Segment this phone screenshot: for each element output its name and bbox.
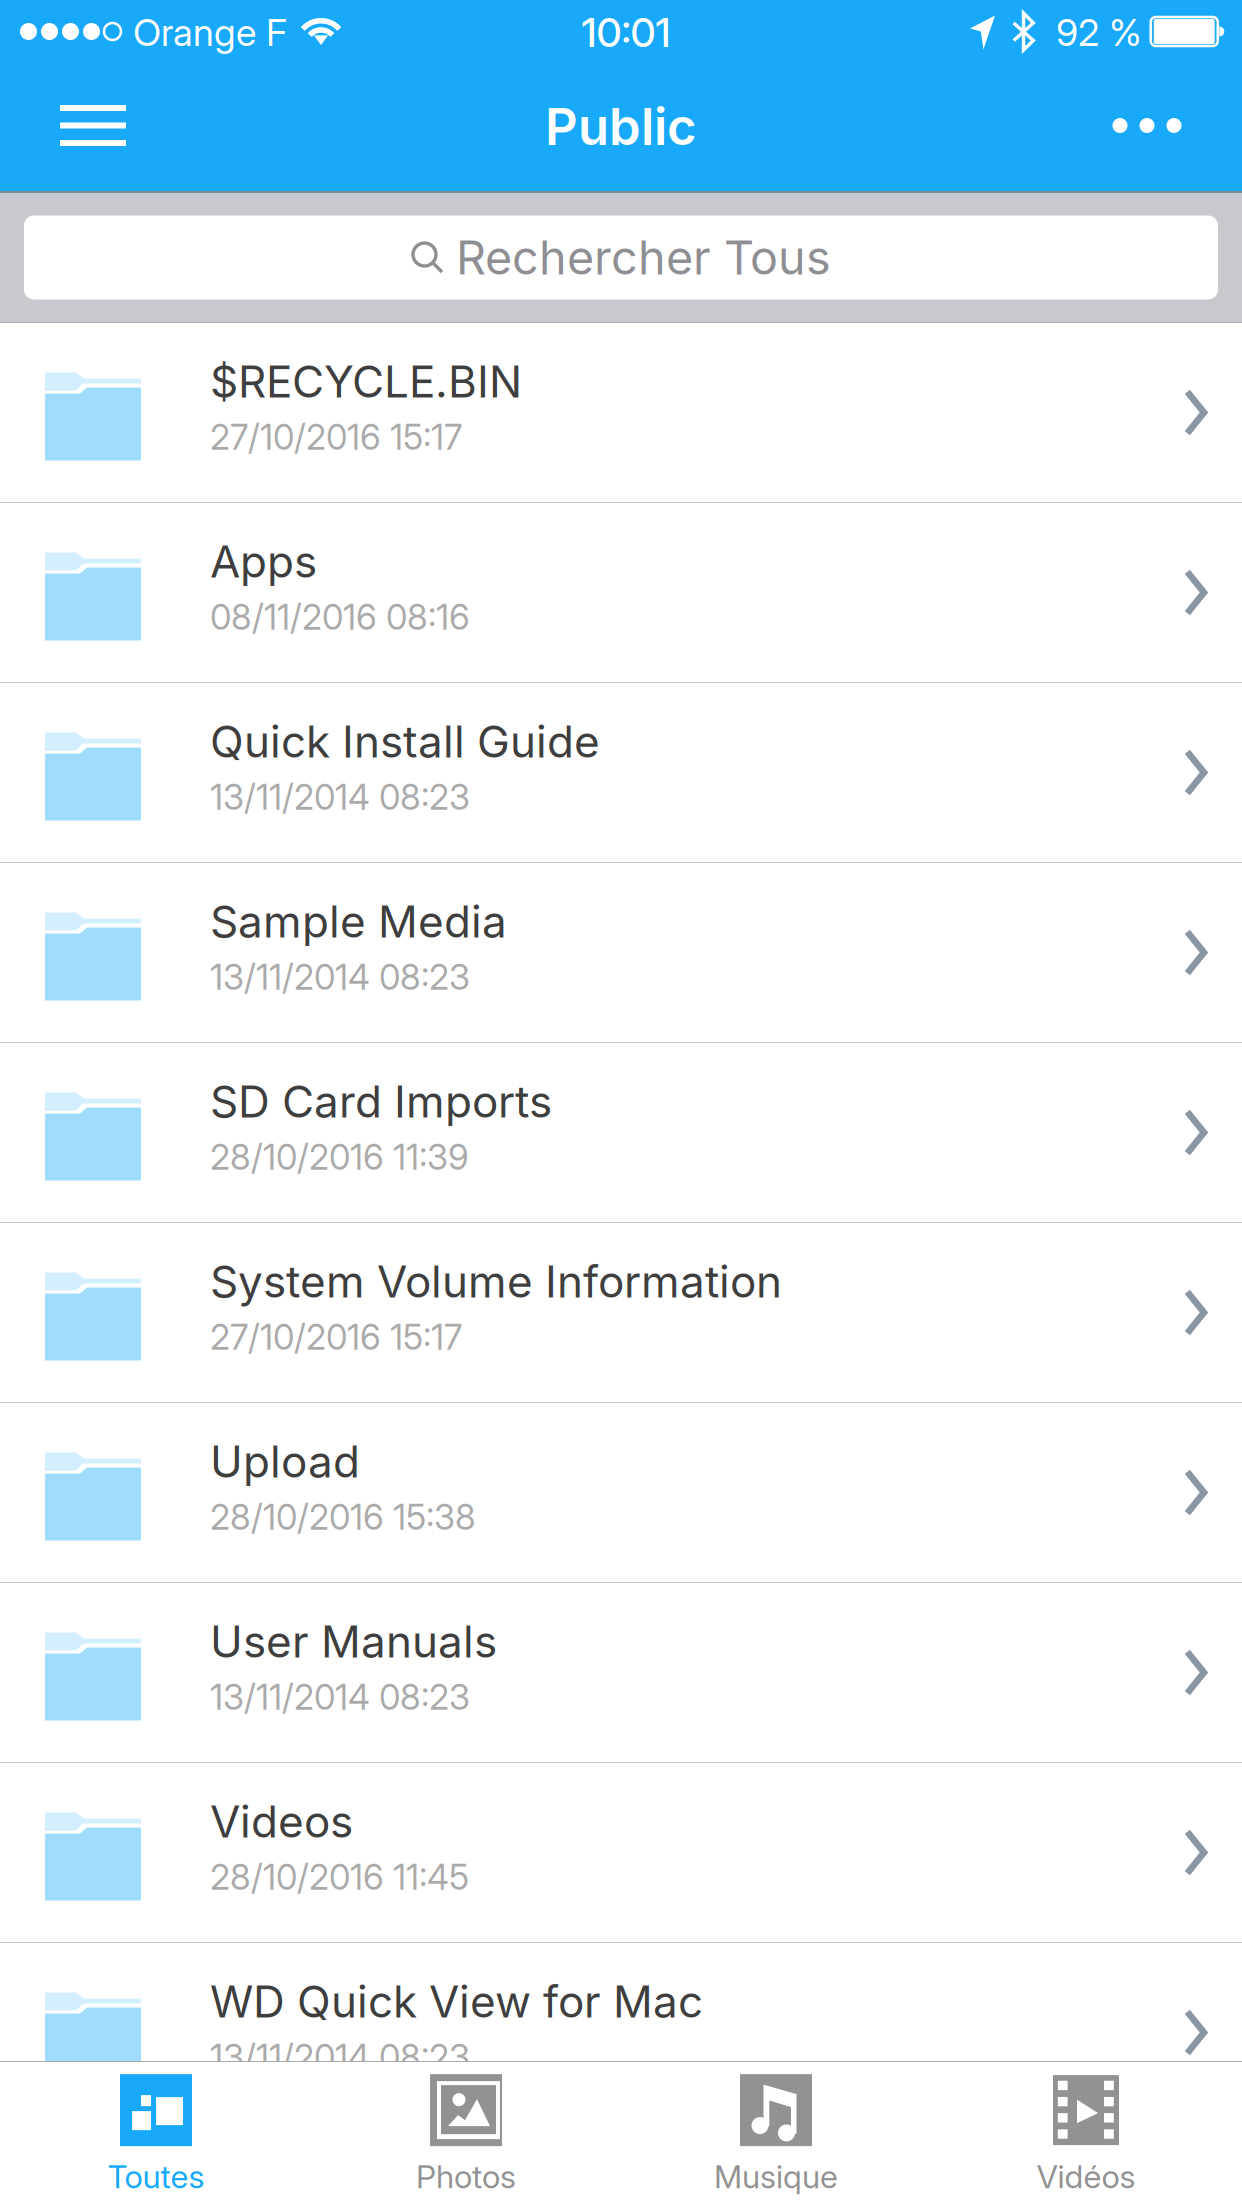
button[interactable]: Quick Install Guide [0, 683, 1242, 863]
button[interactable]: Upload [0, 1403, 1242, 1583]
button[interactable]: Rechercher Tous [24, 215, 1218, 299]
button[interactable]: SD Card Imports [0, 1043, 1242, 1223]
button[interactable]: Musique [621, 2062, 931, 2208]
staticText: 28/10/2016 15:38 [210, 1496, 476, 1538]
button[interactable]: Menu [37, 69, 149, 181]
staticText: WD Quick View for Mac [210, 1975, 703, 2028]
staticText: Photos [416, 2157, 516, 2196]
staticText: 27/10/2016 15:17 [210, 1316, 462, 1358]
button[interactable]: Videos [0, 1763, 1242, 1943]
staticText: System Volume Information [210, 1255, 782, 1308]
staticText: Sample Media [210, 895, 507, 948]
button[interactable]: $RECYCLE.BIN [0, 323, 1242, 503]
staticText: Videos [210, 1795, 353, 1848]
button[interactable]: More options [1091, 69, 1203, 181]
staticText: 28/10/2016 11:45 [210, 1856, 469, 1898]
staticText: 08/11/2016 08:16 [210, 596, 470, 638]
staticText: Rechercher Tous [456, 229, 831, 286]
staticText: 13/11/2014 08:23 [210, 2036, 470, 2078]
button[interactable]: WD Quick View for Mac [0, 1943, 1242, 2123]
button[interactable]: Photos [311, 2062, 621, 2208]
staticText: User Manuals [210, 1615, 497, 1668]
button[interactable]: Sample Media [0, 863, 1242, 1043]
staticText: 10:01 [581, 8, 670, 57]
staticText: 28/10/2016 11:39 [210, 1136, 469, 1178]
staticText: Public [545, 96, 697, 157]
staticText: 13/11/2014 08:23 [210, 956, 470, 998]
staticText: Orange F [133, 10, 287, 55]
staticText: Vidéos [1036, 2157, 1135, 2196]
staticText: 92 % [1056, 10, 1142, 55]
staticText: Apps [210, 535, 317, 588]
staticText: Musique [714, 2157, 838, 2196]
button[interactable]: Apps [0, 503, 1242, 683]
staticText: Upload [210, 1435, 360, 1488]
staticText: 13/11/2014 08:23 [210, 776, 470, 818]
button[interactable]: User Manuals [0, 1583, 1242, 1763]
button[interactable]: Vidéos [931, 2062, 1241, 2208]
staticText: 13/11/2014 08:23 [210, 1676, 470, 1718]
staticText: SD Card Imports [210, 1075, 552, 1128]
button[interactable]: Toutes [1, 2062, 311, 2208]
staticText: 27/10/2016 15:17 [210, 416, 462, 458]
button[interactable]: System Volume Information [0, 1223, 1242, 1403]
staticText: Quick Install Guide [210, 715, 600, 768]
staticText: Toutes [107, 2157, 204, 2196]
staticText: $RECYCLE.BIN [210, 355, 522, 408]
